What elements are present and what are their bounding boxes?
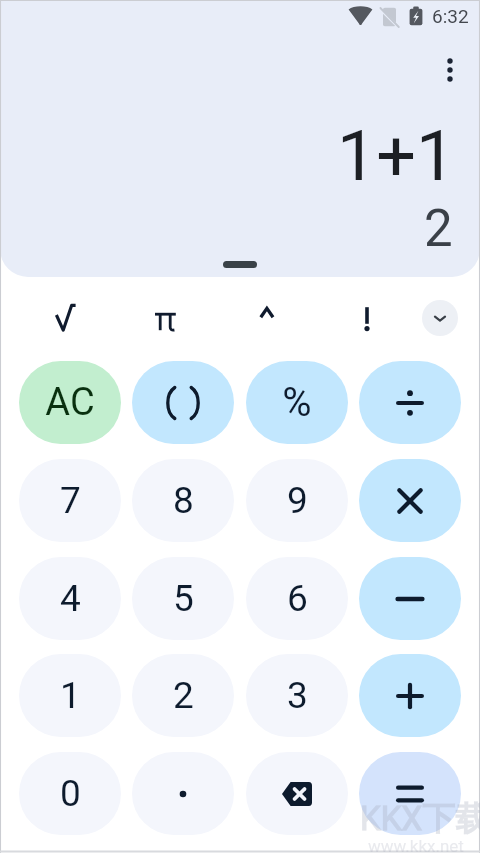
staticText: 2	[424, 199, 453, 259]
staticText: 5	[173, 577, 194, 620]
staticText: AC	[45, 380, 95, 425]
button[interactable]: Pi	[119, 291, 219, 345]
button[interactable]: More options	[429, 49, 471, 91]
staticText: 1+1	[337, 115, 456, 197]
staticText: 0	[60, 772, 81, 815]
staticText: 6:32	[432, 5, 469, 27]
button[interactable]: Multiply	[359, 459, 461, 542]
button[interactable]: Power	[219, 291, 319, 345]
staticText: 4	[60, 577, 81, 620]
button[interactable]: Plus	[359, 654, 461, 737]
button[interactable]: Backspace	[246, 752, 348, 835]
staticText: 9	[287, 479, 308, 522]
button[interactable]: Equals	[359, 752, 461, 835]
button[interactable]: 2	[132, 654, 234, 737]
button[interactable]: Minus	[359, 557, 461, 640]
button[interactable]: 6	[246, 557, 348, 640]
button[interactable]: %	[246, 361, 348, 444]
button[interactable]: 4	[19, 557, 121, 640]
button[interactable]: 8	[132, 459, 234, 542]
staticText: 2	[173, 674, 194, 717]
button[interactable]: Factorial	[319, 291, 419, 345]
button[interactable]: 5	[132, 557, 234, 640]
button[interactable]: 1	[19, 654, 121, 737]
button[interactable]: Decimal point	[132, 752, 234, 835]
staticText: 6	[287, 577, 308, 620]
button[interactable]: 0	[19, 752, 121, 835]
staticText: www.kkx.net	[368, 836, 464, 853]
button[interactable]: AC	[19, 361, 121, 444]
button[interactable]: Square root	[19, 291, 119, 345]
button[interactable]: 3	[246, 654, 348, 737]
staticText: 7	[60, 479, 81, 522]
button[interactable]: Divide	[359, 361, 461, 444]
staticText: %	[282, 379, 312, 426]
button[interactable]: 7	[19, 459, 121, 542]
button[interactable]: Parentheses	[132, 361, 234, 444]
button[interactable]: Show more functions	[422, 300, 458, 336]
staticText: 1	[60, 674, 81, 717]
staticText: 3	[287, 674, 308, 717]
staticText: 8	[173, 479, 194, 522]
button[interactable]: Drag handle	[223, 261, 257, 268]
button[interactable]: 9	[246, 459, 348, 542]
staticText: KKX下载	[360, 798, 480, 840]
